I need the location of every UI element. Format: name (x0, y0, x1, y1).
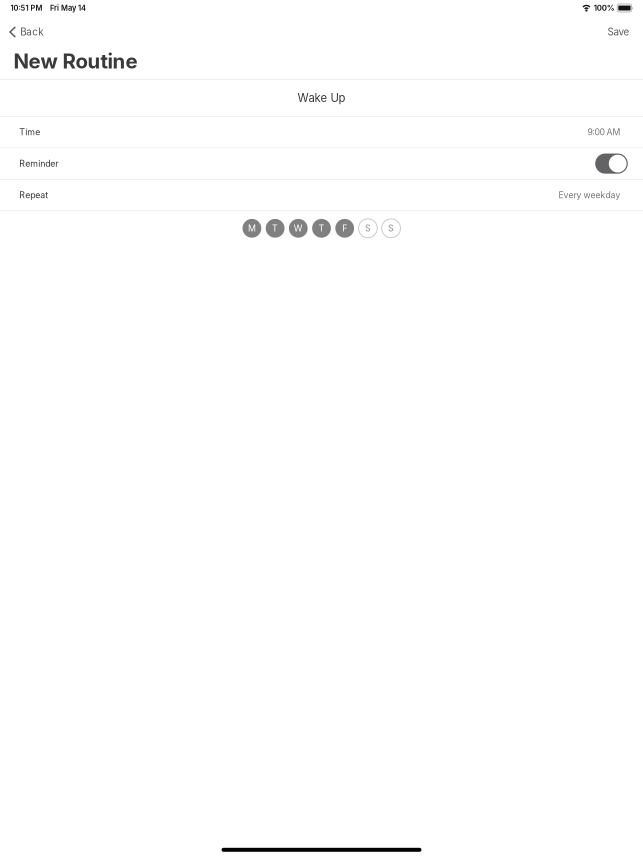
staticText: 9:00 AM (588, 127, 621, 137)
staticText: M (248, 223, 256, 234)
button[interactable]: S (358, 219, 377, 238)
staticText: Every weekday (559, 190, 621, 200)
staticText: Repeat (19, 190, 48, 200)
staticText: 10:51 PM (11, 3, 43, 12)
staticText: Reminder (19, 158, 58, 169)
button[interactable]: Time (0, 117, 643, 148)
button[interactable]: T (266, 219, 284, 238)
button[interactable]: W (289, 219, 308, 238)
staticText: T (272, 223, 278, 234)
button[interactable]: Wake Up (0, 80, 643, 117)
button[interactable]: Reminder (595, 153, 628, 174)
button[interactable]: Back (0, 23, 51, 41)
staticText: W (294, 223, 303, 234)
button[interactable]: M (242, 219, 261, 238)
staticText: Save (607, 26, 629, 38)
staticText: T (318, 223, 324, 234)
staticText: Fri May 14 (50, 3, 86, 12)
staticText: Wake Up (297, 91, 345, 105)
staticText: New Routine (13, 49, 137, 73)
button[interactable]: S (382, 219, 400, 238)
staticText: Back (20, 26, 43, 38)
button[interactable]: Repeat (0, 180, 643, 211)
staticText: F (342, 223, 347, 234)
staticText: S (388, 223, 394, 234)
button[interactable]: T (312, 219, 331, 238)
staticText: Time (19, 127, 40, 137)
staticText: S (365, 223, 371, 234)
button[interactable]: F (335, 219, 354, 238)
staticText: 100% (594, 3, 615, 13)
button[interactable]: Reminder (0, 148, 643, 180)
button[interactable]: Save (599, 23, 643, 41)
